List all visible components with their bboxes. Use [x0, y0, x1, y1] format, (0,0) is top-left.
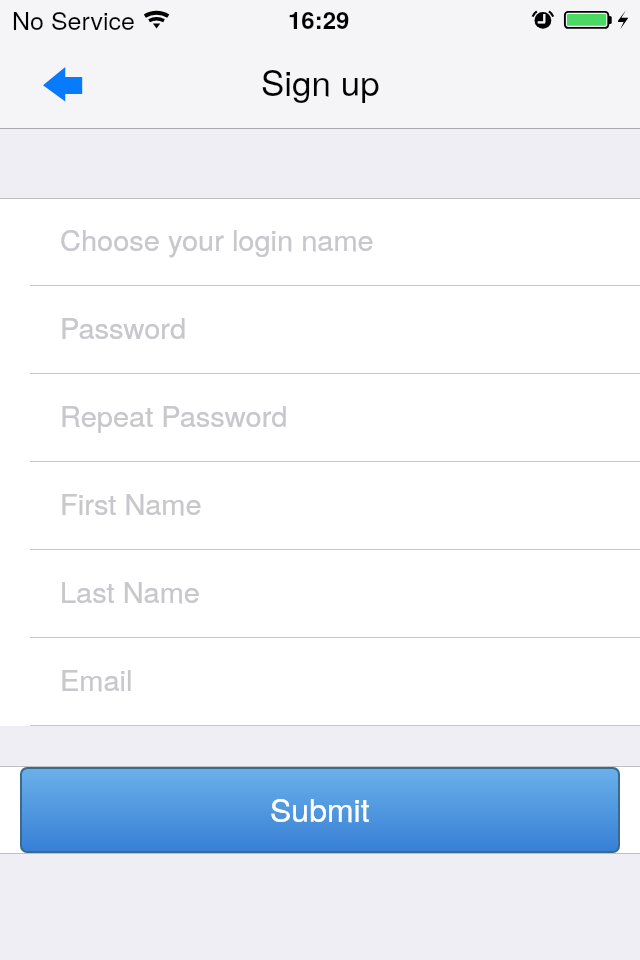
- staticText: Email: [60, 658, 133, 700]
- staticText: 16:29: [288, 2, 350, 36]
- button[interactable]: Last Name: [0, 550, 640, 638]
- staticText: Last Name: [60, 570, 200, 612]
- button[interactable]: Back: [20, 52, 106, 118]
- button[interactable]: Submit: [22, 769, 618, 851]
- button[interactable]: Email: [0, 638, 640, 726]
- staticText: Repeat Password: [60, 394, 288, 436]
- staticText: Choose your login name: [60, 218, 374, 260]
- button[interactable]: Repeat Password: [0, 374, 640, 462]
- staticText: First Name: [60, 482, 202, 524]
- button[interactable]: Choose your login name: [0, 199, 640, 286]
- staticText: Password: [60, 306, 187, 348]
- staticText: Sign up: [261, 56, 380, 106]
- staticText: Submit: [270, 785, 370, 831]
- button[interactable]: Password: [0, 286, 640, 374]
- staticText: No Service: [12, 1, 136, 37]
- button[interactable]: First Name: [0, 462, 640, 550]
